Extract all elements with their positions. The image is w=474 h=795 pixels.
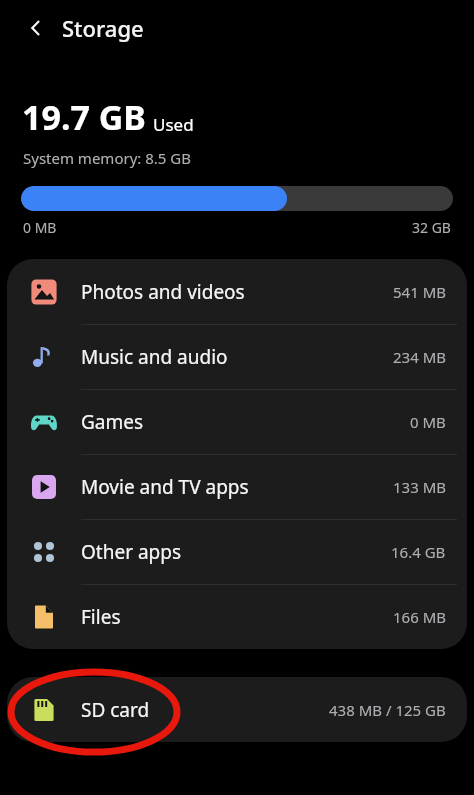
- staticText: System memory: 8.5 GB: [23, 148, 191, 168]
- staticText: Games: [81, 409, 144, 435]
- staticText: 16.4 GB: [391, 542, 446, 562]
- button[interactable]: Movie and TV apps: [7, 454, 467, 519]
- staticText: SD card: [81, 697, 150, 723]
- staticText: 32 GB: [412, 218, 451, 237]
- staticText: 541 MB: [393, 282, 446, 302]
- staticText: Other apps: [81, 539, 182, 565]
- button[interactable]: Files: [7, 584, 467, 649]
- staticText: 166 MB: [393, 607, 446, 627]
- staticText: Photos and videos: [81, 279, 245, 305]
- button[interactable]: Photos and videos: [7, 259, 467, 324]
- button[interactable]: Other apps: [7, 519, 467, 584]
- staticText: Used: [153, 113, 194, 136]
- staticText: 234 MB: [393, 347, 446, 367]
- button[interactable]: Games: [7, 389, 467, 454]
- staticText: 19.7 GB: [22, 94, 146, 140]
- staticText: Movie and TV apps: [81, 474, 249, 500]
- staticText: 438 MB / 125 GB: [329, 700, 446, 720]
- button[interactable]: Music and audio: [7, 324, 467, 389]
- staticText: 0 MB: [410, 412, 446, 432]
- staticText: Storage: [62, 13, 144, 43]
- staticText: Music and audio: [81, 344, 228, 370]
- staticText: Files: [81, 604, 121, 630]
- staticText: 133 MB: [393, 477, 446, 497]
- button[interactable]: Back: [16, 8, 56, 48]
- staticText: 0 MB: [23, 218, 57, 237]
- button[interactable]: SD card: [7, 677, 467, 742]
